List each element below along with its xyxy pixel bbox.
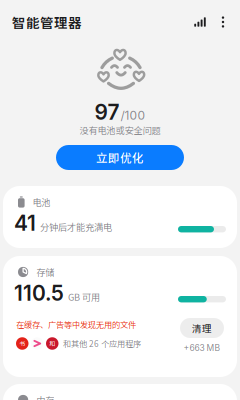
staticText: 立即优化	[96, 149, 144, 166]
button[interactable]: More options	[213, 10, 233, 34]
staticText: 110.5	[14, 280, 64, 306]
staticText: 在缓存、广告等中发现无用的文件	[16, 319, 136, 330]
staticText: 和	[49, 339, 55, 348]
staticText: 存储	[36, 265, 54, 279]
staticText: 没有电池或安全问题	[79, 123, 160, 137]
staticText: 智能管理器	[12, 12, 82, 32]
staticText: 书	[19, 339, 25, 348]
staticText: +663 MB	[183, 343, 220, 353]
staticText: 97	[94, 99, 119, 125]
staticText: 清理	[192, 321, 212, 335]
staticText: /100	[120, 108, 145, 122]
staticText: 内存	[36, 393, 54, 400]
staticText: 分钟后才能充满电	[40, 220, 112, 233]
staticText: GB 可用	[68, 290, 100, 303]
button[interactable]: 立即优化	[56, 145, 184, 170]
button[interactable]: 清理	[180, 318, 224, 338]
staticText: 41	[14, 210, 36, 236]
button[interactable]: 存储	[3, 256, 237, 377]
button[interactable]: Usage statistics	[188, 10, 212, 34]
staticText: 和其他 26 个应用程序	[63, 338, 141, 349]
button[interactable]: 电池	[3, 186, 237, 248]
staticText: 电池	[33, 195, 51, 209]
